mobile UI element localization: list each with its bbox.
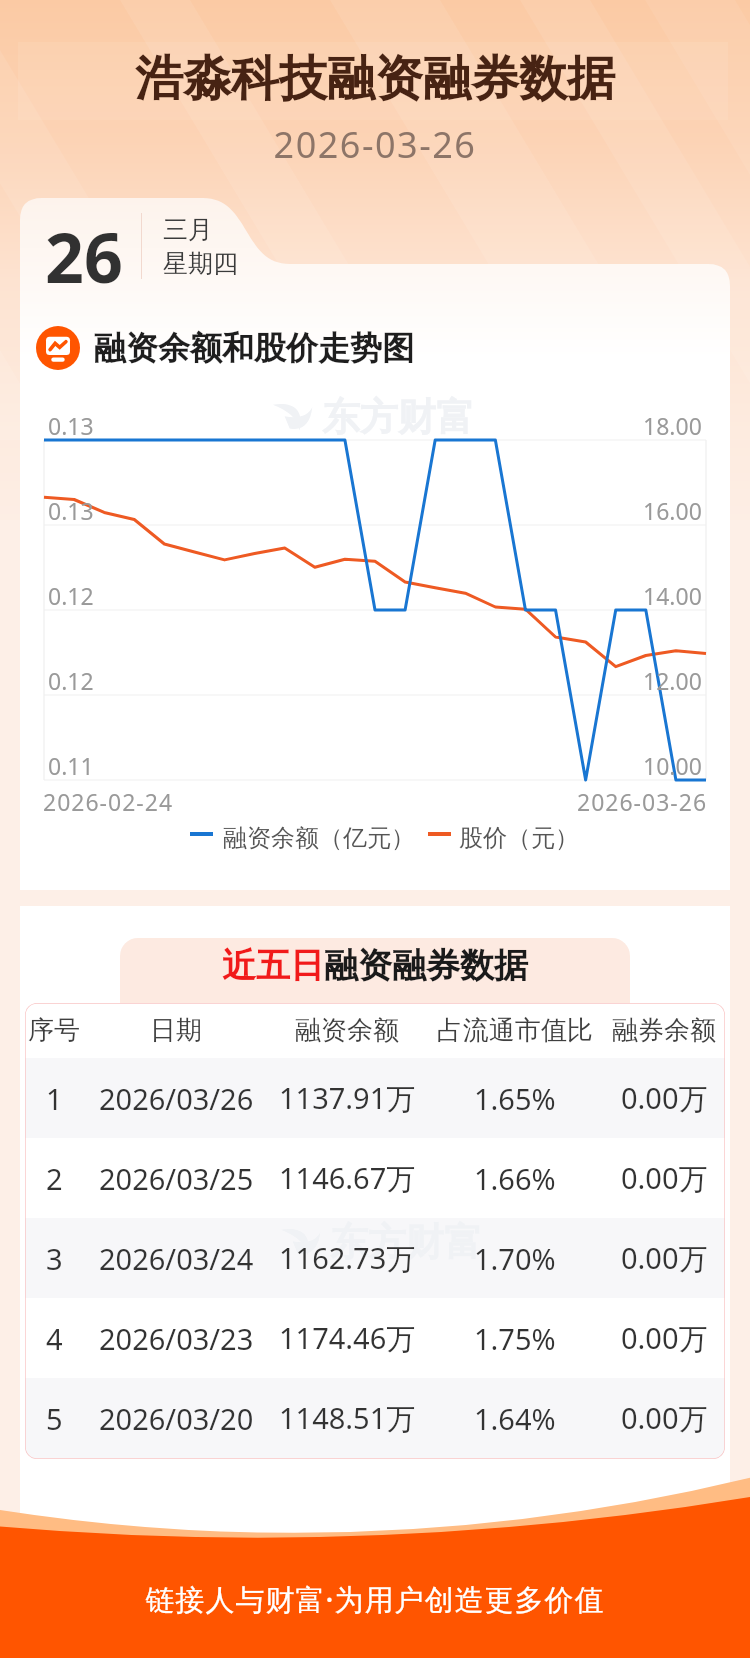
staticText: 12.00	[643, 665, 702, 696]
staticText: 东方财富	[322, 393, 474, 441]
staticText: 融券余额	[612, 1014, 716, 1047]
staticText: 1.66%	[474, 1159, 556, 1198]
staticText: 1.75%	[474, 1319, 556, 1358]
staticText: 1137.91万	[279, 1078, 416, 1118]
staticText: 1.70%	[474, 1239, 556, 1278]
staticText: 1162.73万	[279, 1238, 416, 1278]
staticText: 东方财富	[330, 1218, 482, 1266]
staticText: 2026-03-26	[0, 120, 750, 169]
staticText: 1.64%	[474, 1399, 556, 1438]
staticText: 1	[46, 1079, 63, 1118]
staticText: 融资余额（亿元）	[223, 823, 415, 853]
staticText: 日期	[150, 1014, 202, 1047]
staticText: 4	[46, 1319, 63, 1358]
staticText: 浩淼科技融资融券数据	[0, 49, 750, 109]
staticText: 星期四	[163, 248, 238, 279]
staticText: 3	[46, 1239, 63, 1278]
staticText: 2	[46, 1159, 63, 1198]
staticText: 1146.67万	[279, 1158, 416, 1198]
staticText: 1174.46万	[279, 1318, 416, 1358]
staticText: 1.65%	[474, 1079, 556, 1118]
staticText: 26	[45, 210, 123, 303]
staticText: 0.00万	[621, 1078, 708, 1118]
staticText: 2026/03/20	[99, 1399, 254, 1438]
staticText: 0.12	[48, 665, 94, 696]
staticText: 近五日融资融券数据	[222, 944, 528, 987]
staticText: 0.00万	[621, 1238, 708, 1278]
staticText: 10.00	[643, 750, 702, 781]
staticText: 1148.51万	[279, 1398, 416, 1438]
staticText: 0.00万	[621, 1398, 708, 1438]
staticText: 0.11	[48, 750, 94, 781]
staticText: 链接人与财富·为用户创造更多价值	[0, 1579, 750, 1619]
staticText: 2026/03/23	[99, 1319, 254, 1358]
staticText: 股价（元）	[459, 823, 579, 853]
staticText: 2026-03-26	[577, 786, 708, 817]
staticText: 0.13	[48, 495, 94, 526]
staticText: 14.00	[643, 580, 702, 611]
staticText: 2026-02-24	[43, 786, 174, 817]
staticText: 融资余额	[295, 1014, 399, 1047]
staticText: 2026/03/25	[99, 1159, 254, 1198]
staticText: 2026/03/24	[99, 1239, 254, 1278]
staticText: 0.00万	[621, 1158, 708, 1198]
staticText: 0.12	[48, 580, 94, 611]
staticText: 占流通市值比	[437, 1014, 593, 1047]
staticText: 0.13	[48, 410, 94, 441]
staticText: 0.00万	[621, 1318, 708, 1358]
staticText: 18.00	[643, 410, 702, 441]
staticText: 5	[46, 1399, 63, 1438]
staticText: 2026/03/26	[99, 1079, 254, 1118]
staticText: 序号	[28, 1014, 80, 1047]
staticText: 融资余额和股价走势图	[94, 328, 414, 368]
staticText: 16.00	[643, 495, 702, 526]
staticText: 三月	[163, 214, 213, 245]
